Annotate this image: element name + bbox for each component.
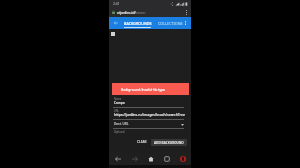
staticText: Dest. URL: [114, 122, 129, 126]
button[interactable]: Tabs: [159, 152, 175, 165]
staticText: Campo: [114, 101, 125, 105]
staticText: Optional: [114, 130, 125, 134]
staticText: ADD BACKGROUND: [154, 141, 184, 145]
button[interactable]: Name: [113, 96, 184, 134]
staticText: URL: [114, 109, 119, 113]
staticText: Name: [114, 97, 122, 101]
staticText: 2:41: [113, 1, 120, 6]
staticText: Background: Invalid file type: [121, 87, 166, 91]
button[interactable]: COLLECTIONS: [157, 17, 184, 29]
button[interactable]: Menu: [181, 17, 189, 29]
staticText: CLEAR: [137, 140, 147, 144]
staticText: otjardins.id/: [117, 10, 136, 14]
staticText: router: [136, 10, 146, 14]
button[interactable]: BACKGROUNDS: [123, 17, 153, 29]
button[interactable]: More options: [182, 8, 190, 16]
button[interactable]: Forward: [126, 152, 143, 165]
staticText: BACKGROUNDS: [124, 21, 152, 26]
button[interactable]: Back: [111, 17, 121, 29]
button[interactable]: Background: Invalid file type: [112, 83, 189, 95]
button[interactable]: Opera menu: [175, 152, 191, 165]
button[interactable]: Back: [109, 152, 126, 165]
staticText: https://jardins.ru/images/touch/searchTr…: [114, 112, 185, 117]
button[interactable]: CLEAR: [136, 138, 148, 145]
staticText: COLLECTIONS: [158, 21, 183, 26]
button[interactable]: ADD BACKGROUND: [151, 139, 187, 146]
button[interactable]: Home: [143, 152, 159, 165]
